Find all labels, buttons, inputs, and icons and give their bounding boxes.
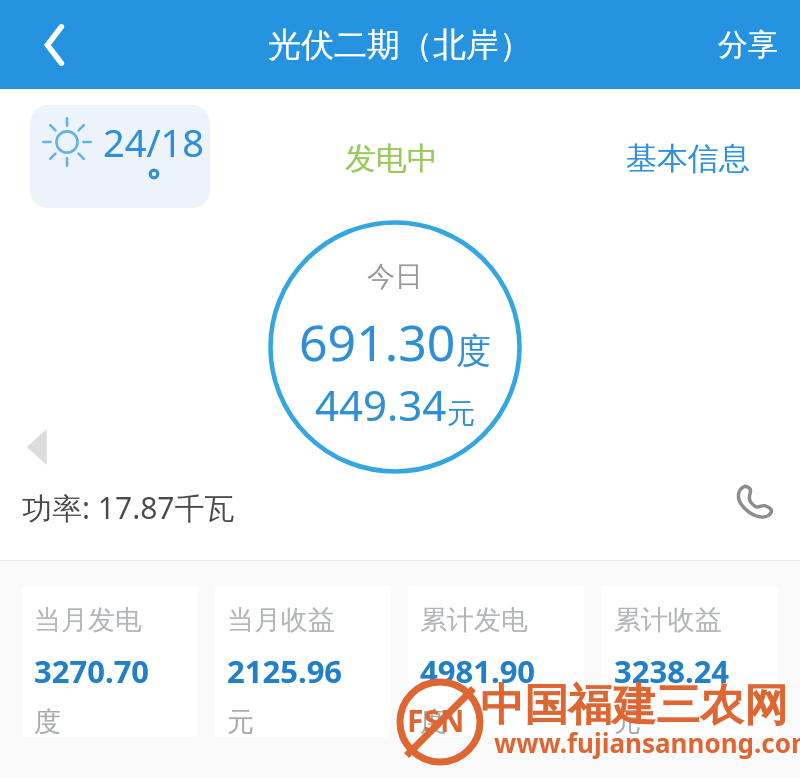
staticText: 光伏二期（北岸）	[268, 24, 532, 66]
staticText: 449.34	[315, 376, 447, 433]
button[interactable]: 累计发电	[408, 585, 584, 737]
staticText: 当月发电	[34, 603, 142, 637]
staticText: 基本信息	[626, 139, 750, 178]
staticText: 元	[447, 396, 475, 431]
staticText: 3270.70	[34, 650, 150, 692]
staticText: 元	[227, 705, 254, 737]
staticText: 分享	[718, 26, 778, 64]
staticText: 累计收益	[614, 603, 722, 637]
staticText: 中国福建三农网	[480, 678, 788, 733]
staticText: 24/18	[103, 116, 205, 168]
staticText: 元	[614, 705, 641, 737]
staticText: 功率: 17.87千瓦	[22, 487, 235, 528]
button[interactable]: 累计收益	[602, 585, 778, 737]
staticText: 今日	[367, 259, 423, 294]
staticText: www.fujiansannong.com	[494, 725, 800, 760]
staticText: 度	[420, 705, 447, 737]
staticText: 当月收益	[227, 603, 335, 637]
staticText: 度	[34, 705, 61, 737]
button[interactable]: 今日	[268, 220, 522, 474]
staticText: 4981.90	[420, 650, 536, 692]
button[interactable]: Back	[18, 10, 88, 80]
button[interactable]: 发电中	[345, 139, 438, 178]
button[interactable]: 当月收益	[215, 585, 390, 737]
button[interactable]: 当月发电	[22, 585, 197, 737]
button[interactable]: 24/18	[30, 105, 210, 208]
staticText: 3238.24	[614, 650, 730, 692]
staticText: 累计发电	[420, 603, 528, 637]
staticText: 度	[456, 329, 491, 373]
staticText: 691.30	[299, 308, 456, 376]
staticText: 2125.96	[227, 650, 343, 692]
button[interactable]: Call	[726, 475, 782, 531]
button[interactable]: Previous	[18, 419, 58, 475]
button[interactable]: 基本信息	[620, 133, 756, 184]
button[interactable]: 分享	[696, 10, 800, 80]
staticText: FSN	[407, 700, 465, 741]
